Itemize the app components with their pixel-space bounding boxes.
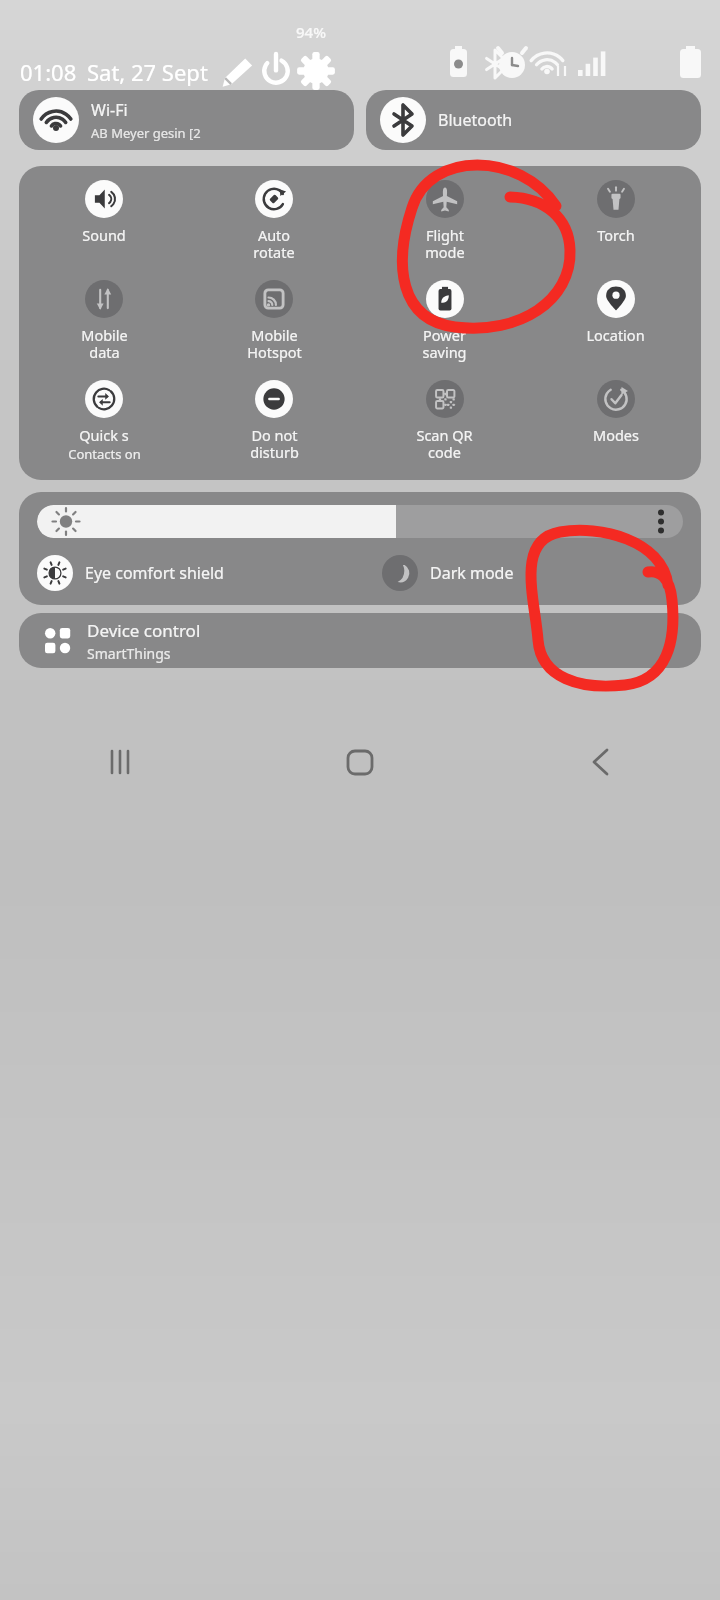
button[interactable]: Do not disturb xyxy=(189,380,359,480)
staticText: Power saving xyxy=(422,325,467,362)
staticText: Sound xyxy=(82,225,126,245)
button[interactable]: Torch xyxy=(530,180,701,280)
staticText: AB Meyer gesin [2 xyxy=(91,124,201,142)
button[interactable]: Sound xyxy=(19,180,189,280)
button[interactable]: Device control xyxy=(19,613,701,668)
button[interactable]: Power saving xyxy=(359,280,530,380)
button[interactable]: Mobile Hotspot xyxy=(189,280,359,380)
button[interactable]: Eye comfort shield xyxy=(19,550,382,596)
staticText: Bluetooth xyxy=(438,109,513,131)
staticText: Flight mode xyxy=(425,225,465,262)
button[interactable]: Modes xyxy=(530,380,701,480)
button[interactable]: Dark mode xyxy=(382,550,701,596)
staticText: Sat, 27 Sept xyxy=(87,57,208,87)
button[interactable]: Bluetooth xyxy=(366,90,701,150)
staticText: Location xyxy=(586,325,645,345)
staticText: Modes xyxy=(593,425,639,445)
staticText: Quick s xyxy=(79,425,129,445)
staticText: 01:08 xyxy=(20,57,77,87)
staticText: 94% xyxy=(296,22,326,42)
button[interactable]: Scan QR code xyxy=(359,380,530,480)
staticText: Mobile data xyxy=(81,325,128,362)
staticText: Torch xyxy=(597,225,635,245)
button[interactable]: Flight mode xyxy=(359,180,530,280)
button[interactable]: Wi-Fi xyxy=(19,90,354,150)
staticText: SmartThings xyxy=(87,644,171,663)
button[interactable]: Power off xyxy=(253,48,299,94)
button[interactable]: Back xyxy=(480,736,720,788)
staticText: Mobile Hotspot xyxy=(247,325,302,362)
staticText: Device control xyxy=(87,619,201,642)
button[interactable]: Edit xyxy=(213,48,259,94)
button[interactable] xyxy=(37,505,683,538)
staticText: Eye comfort shield xyxy=(85,562,224,584)
staticText: Contacts on xyxy=(68,445,141,463)
staticText: Wi-Fi xyxy=(91,99,128,121)
button[interactable]: Location xyxy=(530,280,701,380)
staticText: Auto rotate xyxy=(253,225,295,262)
button[interactable]: Recents xyxy=(0,736,240,788)
button[interactable]: Mobile data xyxy=(19,280,189,380)
staticText: Scan QR code xyxy=(416,425,473,462)
staticText: Dark mode xyxy=(430,562,514,584)
button[interactable]: Quick s xyxy=(19,380,189,480)
button[interactable]: Auto rotate xyxy=(189,180,359,280)
staticText: Do not disturb xyxy=(250,425,299,462)
button[interactable]: Home xyxy=(240,736,480,788)
button[interactable]: Settings xyxy=(293,48,339,94)
